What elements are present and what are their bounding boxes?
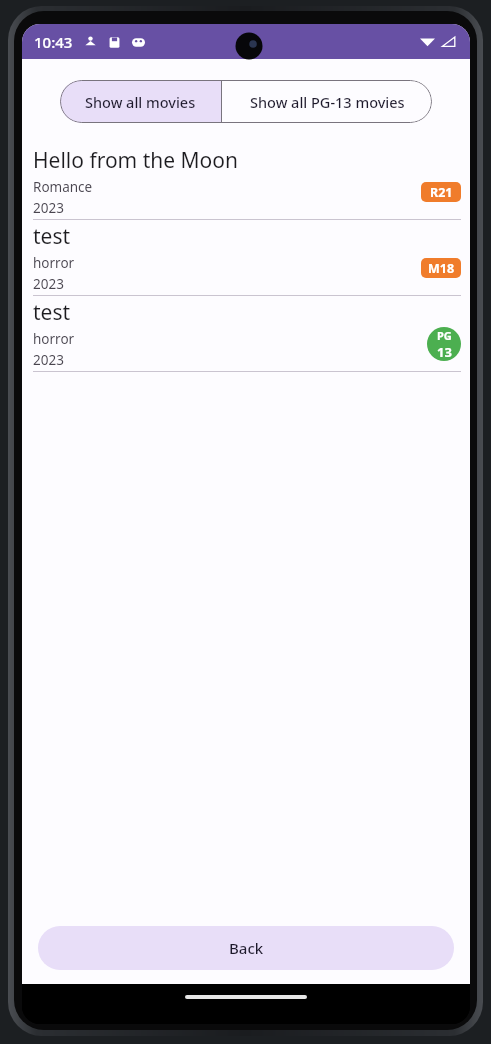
button[interactable]: Show all movies [60, 80, 221, 123]
staticText: horror [33, 330, 75, 348]
staticText: 10:43 [34, 32, 73, 52]
staticText: test [33, 222, 71, 251]
button[interactable]: test [22, 296, 470, 371]
staticText: 2023 [33, 275, 64, 293]
button[interactable]: Hello from the Moon [22, 144, 470, 219]
staticText: M18 [428, 260, 455, 277]
staticText: Back [229, 938, 264, 958]
staticText: horror [33, 254, 75, 272]
staticText: test [33, 298, 71, 327]
button[interactable]: Show all PG-13 movies [222, 80, 432, 123]
staticText: Hello from the Moon [33, 146, 238, 175]
staticText: 13 [437, 343, 452, 361]
staticText: Show all movies [85, 92, 196, 112]
staticText: 2023 [33, 199, 64, 217]
staticText: 2023 [33, 351, 64, 369]
staticText: Show all PG-13 movies [250, 92, 405, 112]
staticText: PG [437, 328, 452, 343]
button[interactable]: test [22, 220, 470, 295]
staticText: R21 [430, 184, 453, 201]
staticText: Romance [33, 178, 93, 196]
button[interactable]: Back [38, 926, 454, 970]
